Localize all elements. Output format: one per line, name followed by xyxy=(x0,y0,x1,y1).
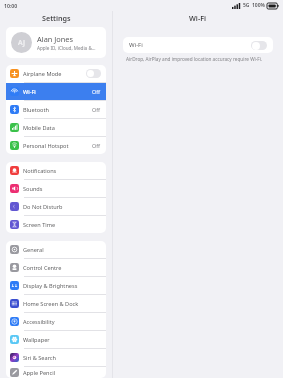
button[interactable]: AJ xyxy=(6,27,106,58)
staticText: Off xyxy=(92,106,100,113)
staticText: AJ xyxy=(18,38,25,48)
staticText: Do Not Disturb xyxy=(23,203,63,211)
staticText: Screen Time xyxy=(23,221,56,229)
staticText: Accessibility xyxy=(23,318,55,326)
button[interactable]: Accessibility xyxy=(6,313,106,330)
button[interactable]: Display & Brightness xyxy=(6,277,106,294)
staticText: 100% xyxy=(252,2,265,9)
button[interactable]: Screen Time xyxy=(6,216,106,233)
button[interactable]: Personal Hotspot xyxy=(6,137,106,154)
button[interactable]: Airplane Mode toggle xyxy=(86,69,101,78)
button[interactable]: Bluetooth xyxy=(6,101,106,118)
staticText: 5G xyxy=(243,2,250,9)
button[interactable]: Wi-Fi toggle xyxy=(251,41,267,50)
button[interactable]: Wallpaper xyxy=(6,331,106,348)
staticText: Wi-Fi xyxy=(23,88,36,96)
staticText: Apple Pencil xyxy=(23,369,56,377)
staticText: Wallpaper xyxy=(23,336,50,344)
staticText: Mobile Data xyxy=(23,124,55,132)
staticText: Bluetooth xyxy=(23,106,49,114)
staticText: Off xyxy=(92,88,100,95)
staticText: Notifications xyxy=(23,167,57,175)
button[interactable]: Siri & Search xyxy=(6,349,106,366)
staticText: Wi-Fi xyxy=(189,13,207,23)
staticText: Personal Hotspot xyxy=(23,142,69,150)
button[interactable]: Apple Pencil xyxy=(6,367,106,378)
button[interactable]: Wi-Fi xyxy=(6,83,106,100)
button[interactable]: Wi-Fi xyxy=(123,37,273,53)
staticText: Display & Brightness xyxy=(23,282,78,290)
button[interactable]: Mobile Data xyxy=(6,119,106,136)
staticText: Apple ID, iCloud, Media &... xyxy=(37,45,96,51)
staticText: Home Screen & Dock xyxy=(23,300,79,308)
staticText: Alan Jones xyxy=(37,34,74,44)
staticText: General xyxy=(23,246,44,254)
button[interactable]: Home Screen & Dock xyxy=(6,295,106,312)
staticText: Control Centre xyxy=(23,264,62,272)
staticText: Off xyxy=(92,142,100,149)
button[interactable]: Notifications xyxy=(6,162,106,179)
staticText: Settings xyxy=(42,13,71,23)
button[interactable]: Airplane Mode xyxy=(6,65,106,82)
button[interactable]: General xyxy=(6,241,106,258)
staticText: 10:00 xyxy=(4,2,18,9)
staticText: AirDrop, AirPlay and improved location a… xyxy=(126,56,263,62)
staticText: Siri & Search xyxy=(23,354,56,362)
button[interactable]: Control Centre xyxy=(6,259,106,276)
button[interactable]: Do Not Disturb xyxy=(6,198,106,215)
staticText: Sounds xyxy=(23,185,43,193)
button[interactable]: Sounds xyxy=(6,180,106,197)
staticText: Wi-Fi xyxy=(129,41,143,49)
staticText: Airplane Mode xyxy=(23,70,62,78)
